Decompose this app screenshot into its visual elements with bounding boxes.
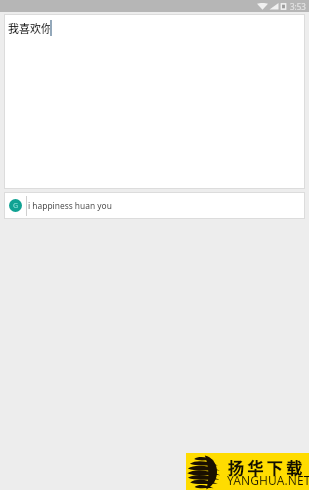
other: YangHua logo [186, 454, 223, 490]
staticText: G [13, 201, 19, 211]
button[interactable]: Translate [4, 192, 305, 219]
other: Wi-Fi [257, 2, 268, 10]
staticText: 扬华下载 [228, 455, 306, 478]
staticText: 我喜欢你 [8, 20, 52, 36]
other: Signal [269, 2, 279, 10]
other: Battery [279, 2, 288, 11]
staticText: YANGHUA.NET [227, 472, 309, 488]
staticText: 3:53 [290, 1, 306, 12]
button[interactable]: 我喜欢你 [4, 14, 305, 189]
other: Translate [9, 199, 22, 212]
staticText: i happiness huan you [28, 200, 112, 211]
